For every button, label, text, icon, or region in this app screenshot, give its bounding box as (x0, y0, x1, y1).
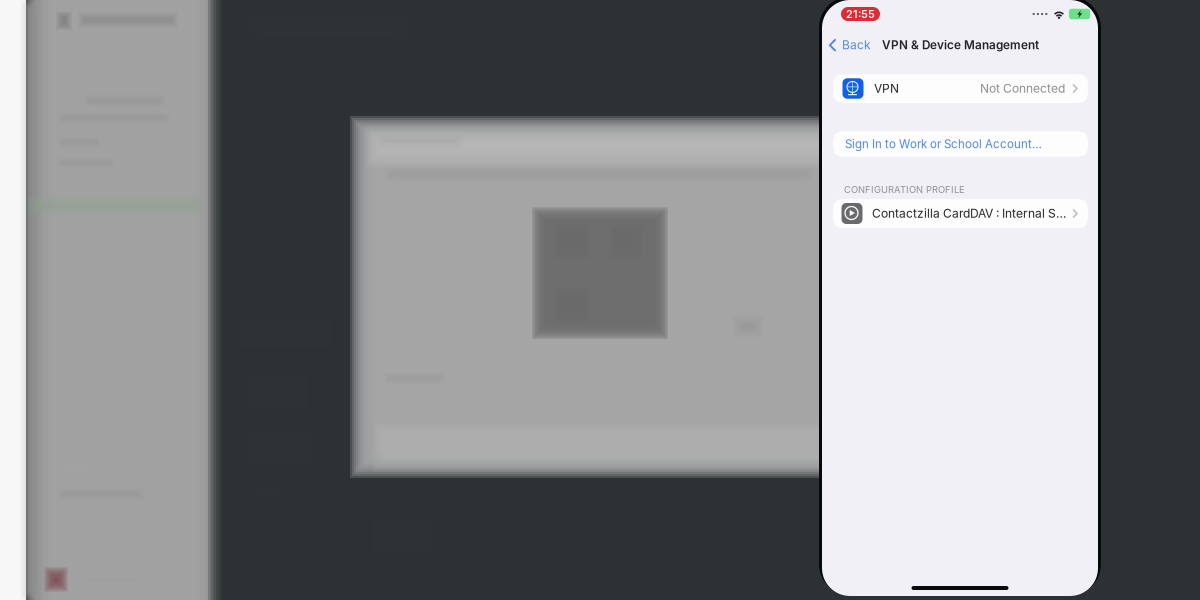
staticText: VPN (874, 81, 899, 96)
staticText: Not Connected (980, 81, 1065, 96)
staticText: Contactzilla CardDAV : Internal S… (872, 206, 1066, 221)
staticText: Back (842, 38, 871, 52)
button[interactable]: Back (822, 33, 874, 57)
button[interactable]: VPN (833, 74, 1088, 103)
button[interactable]: Contactzilla CardDAV : Internal S… (833, 199, 1088, 228)
staticText: CONFIGURATION PROFILE (844, 184, 965, 195)
staticText: VPN & Device Management (882, 38, 1039, 52)
staticText: Sign In to Work or School Account… (845, 137, 1042, 151)
staticText: 21:55 (846, 7, 875, 20)
button[interactable]: Sign In to Work or School Account… (833, 131, 1088, 157)
